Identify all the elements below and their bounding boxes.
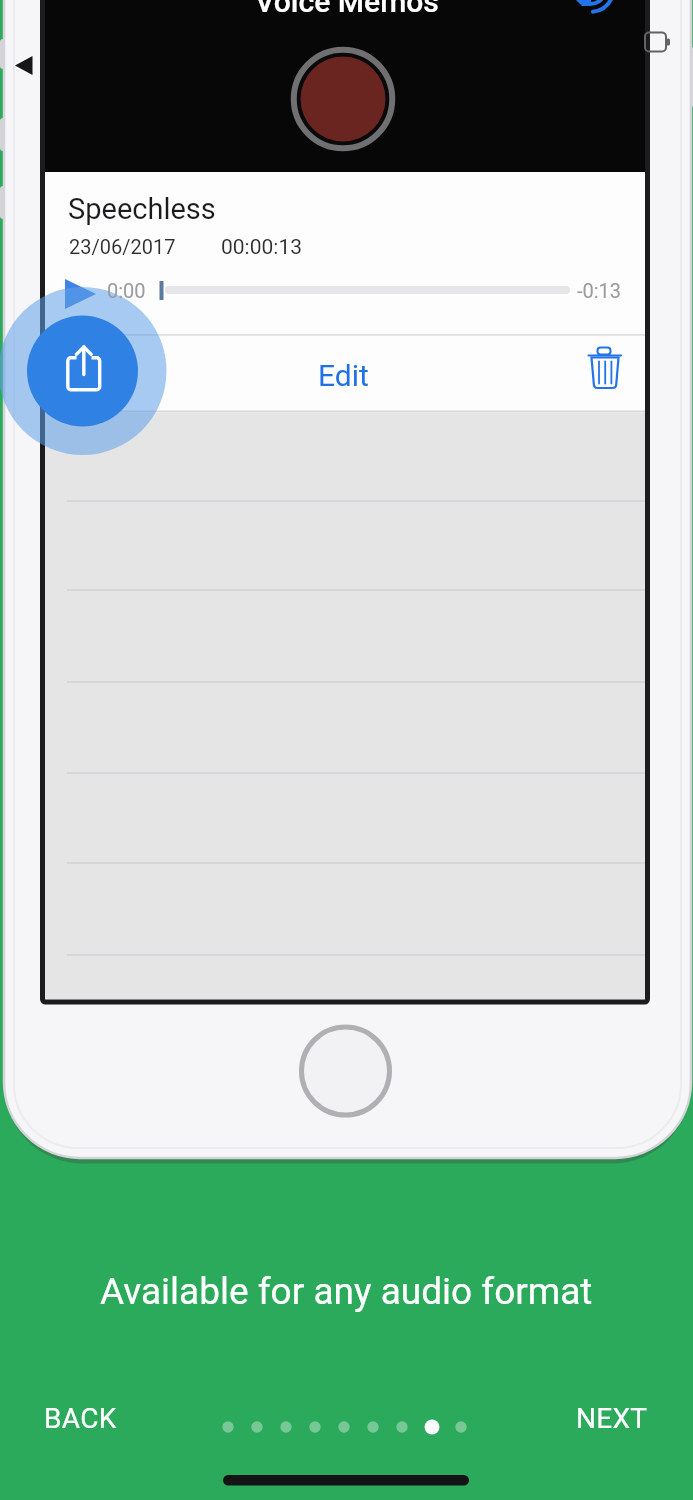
- staticText: NEXT: [576, 1402, 648, 1435]
- staticText: 23/06/2017: [69, 235, 176, 258]
- staticText: BACK: [44, 1402, 117, 1435]
- staticText: 00:00:13: [221, 235, 302, 260]
- staticText: Edit: [318, 358, 369, 393]
- staticText: -0:13: [577, 279, 622, 302]
- staticText: 0:00: [107, 279, 146, 302]
- staticText: Speechless: [68, 192, 216, 226]
- staticText: Available for any audio format: [100, 1270, 593, 1313]
- staticText: Voice Memos: [255, 0, 439, 19]
